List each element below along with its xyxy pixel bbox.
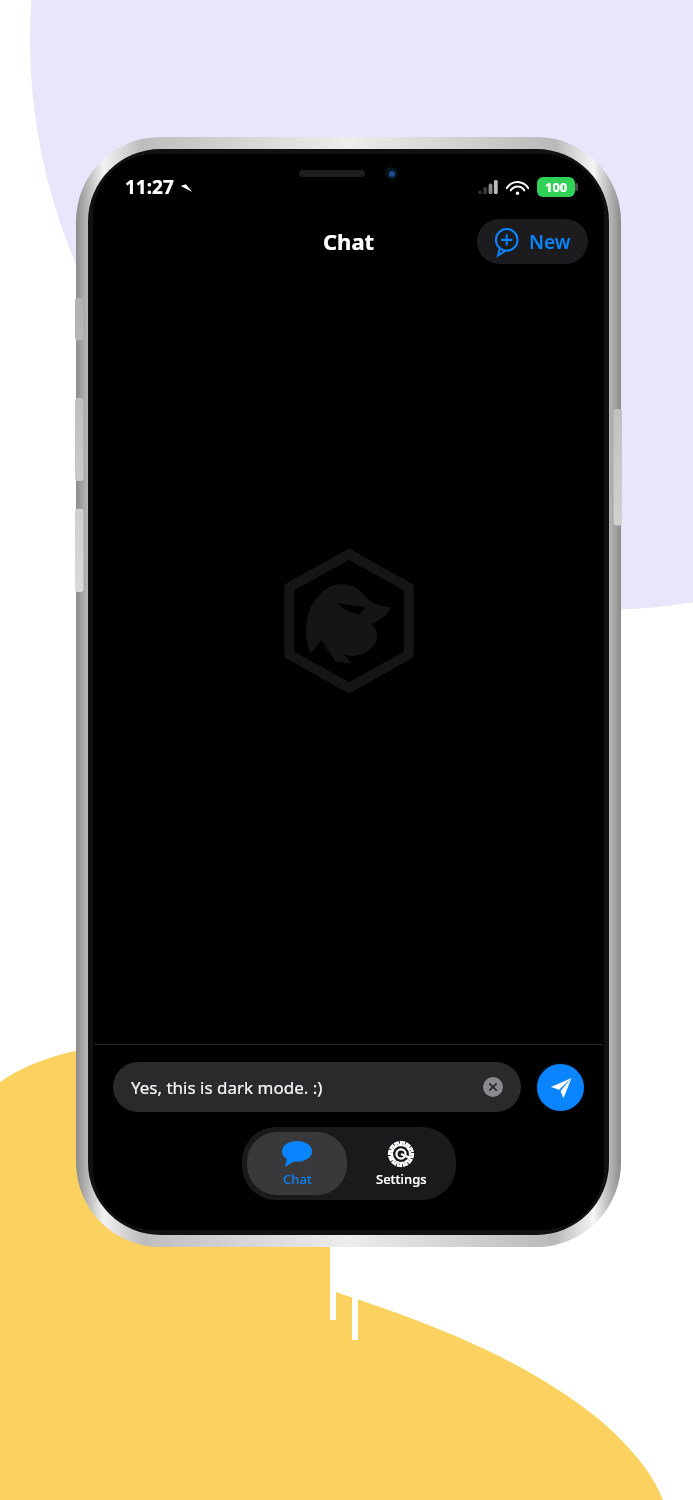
staticText: New — [529, 229, 571, 255]
button[interactable]: Settings — [351, 1132, 451, 1195]
button[interactable]: Chat — [247, 1132, 347, 1195]
staticText: Chat — [283, 1170, 312, 1188]
staticText: Chat — [323, 226, 375, 256]
staticText: Yes, this is dark mode. :) — [131, 1076, 483, 1099]
button[interactable]: Yes, this is dark mode. :) — [113, 1062, 521, 1112]
staticText: 100 — [545, 178, 568, 196]
button[interactable]: Clear text — [483, 1077, 503, 1097]
staticText: Settings — [376, 1170, 427, 1188]
button[interactable]: New — [477, 219, 588, 264]
button[interactable]: Send message — [537, 1064, 584, 1111]
staticText: 11:27 — [125, 174, 174, 200]
